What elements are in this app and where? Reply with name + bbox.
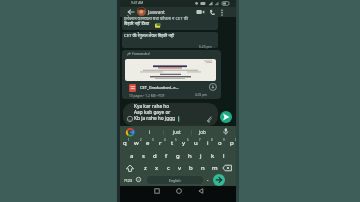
button[interactable]: o <box>213 138 227 148</box>
staticText: ?123 <box>124 178 133 183</box>
button[interactable]: n <box>196 163 210 173</box>
button[interactable]: l <box>217 151 231 161</box>
staticText: Aap kab gaye or <box>134 109 171 116</box>
button[interactable]: y <box>177 138 191 148</box>
button[interactable]: t <box>165 138 179 148</box>
staticText: n <box>201 164 205 172</box>
button[interactable] <box>222 164 233 172</box>
button[interactable] <box>122 32 218 48</box>
button[interactable] <box>196 9 205 15</box>
staticText: . <box>207 175 209 183</box>
button[interactable] <box>154 188 160 194</box>
button[interactable] <box>198 188 204 194</box>
button[interactable]: q <box>120 138 132 148</box>
button[interactable]: k <box>206 151 220 161</box>
button[interactable]: i <box>201 138 215 148</box>
staticText: v <box>178 164 182 172</box>
button[interactable]: job <box>194 128 210 136</box>
staticText: r <box>159 139 162 147</box>
button[interactable] <box>122 17 218 30</box>
button[interactable] <box>123 103 218 126</box>
staticText: 9 <box>223 138 225 142</box>
button[interactable]: u <box>189 138 203 148</box>
staticText: e <box>146 139 150 147</box>
staticText: t <box>171 139 174 147</box>
staticText: d <box>153 152 157 160</box>
staticText: Forwarded <box>132 51 150 56</box>
button[interactable]: z <box>138 163 152 173</box>
button[interactable]: h <box>183 151 197 161</box>
button[interactable]: d <box>148 151 162 161</box>
button[interactable]: s <box>136 151 150 161</box>
button[interactable]: c <box>161 163 175 173</box>
staticText: CET की रेगुलल लेवल बिहारि नहीं <box>124 33 175 39</box>
button[interactable]: m <box>208 163 222 173</box>
button[interactable]: w <box>129 138 143 148</box>
staticText: CET_GraduationL.e... <box>140 85 179 90</box>
button[interactable]: English <box>147 176 203 184</box>
button[interactable]: v <box>173 163 187 173</box>
staticText: i <box>149 129 151 135</box>
button[interactable] <box>213 174 225 186</box>
staticText: Kb ja rahe ho jggg <box>134 115 176 122</box>
button[interactable] <box>209 9 216 16</box>
staticText: 9:47 AM <box>131 1 144 5</box>
staticText: Kya kar rahe ho <box>134 103 170 110</box>
button[interactable]: j <box>194 151 208 161</box>
staticText: 2 <box>140 138 142 142</box>
button[interactable]: f <box>159 151 173 161</box>
button[interactable]: g <box>171 151 185 161</box>
staticText: w <box>134 139 139 147</box>
staticText: 10 pages • 1.2 MB • PDF <box>129 94 165 98</box>
staticText: job <box>199 129 206 135</box>
staticText: z <box>144 164 147 172</box>
button[interactable]: i <box>144 128 155 136</box>
staticText: u <box>194 139 198 147</box>
staticText: Jaswant <box>148 9 165 15</box>
staticText: 6 <box>187 138 189 142</box>
button[interactable] <box>125 164 135 173</box>
button[interactable]: just <box>167 128 186 136</box>
staticText: 5 <box>175 138 177 142</box>
button[interactable]: ?123 <box>121 175 135 185</box>
button[interactable] <box>127 8 135 16</box>
staticText: g <box>176 152 180 160</box>
staticText: 0 <box>235 138 236 142</box>
button[interactable]: e <box>141 138 155 148</box>
staticText: l <box>223 152 225 160</box>
button[interactable] <box>137 7 146 16</box>
button[interactable]: p <box>225 138 236 148</box>
staticText: 6:25 pm <box>199 44 212 48</box>
staticText: k <box>211 152 215 160</box>
staticText: h <box>188 152 192 160</box>
staticText: 1 <box>128 138 130 142</box>
staticText: i <box>207 139 209 147</box>
staticText: b <box>189 164 193 172</box>
button[interactable] <box>122 50 221 99</box>
staticText: x <box>155 164 159 172</box>
staticText: a <box>130 152 134 160</box>
staticText: 4:25 pm <box>195 93 208 97</box>
button[interactable] <box>209 83 217 91</box>
staticText: 4 <box>164 138 166 142</box>
staticText: p <box>230 139 234 147</box>
staticText: 8 <box>211 138 213 142</box>
button[interactable]: x <box>150 163 164 173</box>
staticText: just <box>173 129 181 135</box>
button[interactable]: a <box>125 151 139 161</box>
button[interactable] <box>125 59 216 81</box>
staticText: q <box>123 139 127 147</box>
staticText: f <box>165 152 168 160</box>
button[interactable] <box>220 111 232 123</box>
button[interactable]: . <box>201 174 215 184</box>
staticText: c <box>167 164 170 172</box>
staticText: s <box>142 152 145 160</box>
button[interactable] <box>220 9 224 16</box>
button[interactable] <box>176 188 182 194</box>
staticText: 7 <box>199 138 201 142</box>
staticText: बिहारि नहीं किया <box>124 21 150 27</box>
staticText: j <box>200 152 202 160</box>
button[interactable]: b <box>184 163 198 173</box>
staticText: y <box>182 139 186 147</box>
button[interactable]: r <box>153 138 167 148</box>
